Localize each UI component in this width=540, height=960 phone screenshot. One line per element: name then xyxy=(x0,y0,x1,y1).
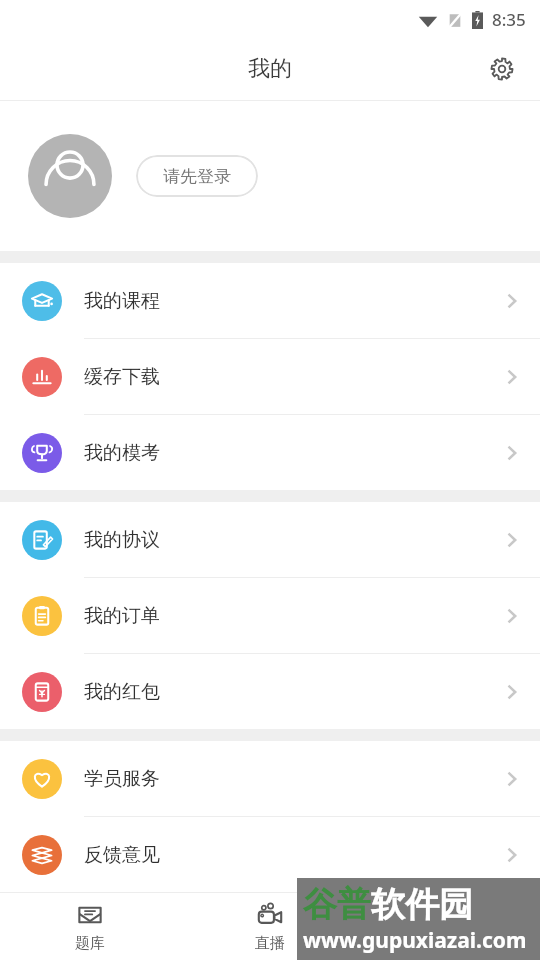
button[interactable]: 我的协议 xyxy=(0,502,540,577)
button[interactable]: 学员服务 xyxy=(0,741,540,816)
staticText: 我的协议 xyxy=(84,528,160,552)
staticText: 直播 xyxy=(255,934,285,953)
button[interactable]: Settings xyxy=(482,49,522,89)
button[interactable]: 直播 xyxy=(180,893,360,960)
staticText: 我的课程 xyxy=(84,289,160,313)
button[interactable]: 题库 xyxy=(0,893,180,960)
staticText: 我的模考 xyxy=(84,441,160,465)
staticText: 题库 xyxy=(75,934,105,953)
staticText: www.gupuxiazai.com xyxy=(303,926,527,955)
staticText: 反馈意见 xyxy=(84,843,160,867)
button[interactable]: 我的模考 xyxy=(0,415,540,490)
staticText: 我的订单 xyxy=(84,604,160,628)
button[interactable]: 缓存下载 xyxy=(0,339,540,414)
button[interactable]: 我的订单 xyxy=(0,578,540,653)
staticText: 谷普 xyxy=(303,883,371,926)
staticText: 我的红包 xyxy=(84,680,160,704)
button[interactable]: Avatar xyxy=(28,134,112,218)
staticText: 缓存下载 xyxy=(84,365,160,389)
staticText: 8:35 xyxy=(492,8,526,31)
staticText: 软件园 xyxy=(371,883,473,926)
button[interactable]: 反馈意见 xyxy=(0,817,540,892)
staticText: 请先登录 xyxy=(163,166,231,187)
staticText: 我的 xyxy=(248,55,292,83)
button[interactable]: 我的红包 xyxy=(0,654,540,729)
staticText: 学员服务 xyxy=(84,767,160,791)
button[interactable]: 请先登录 xyxy=(136,155,258,197)
button[interactable]: 我的课程 xyxy=(0,263,540,338)
